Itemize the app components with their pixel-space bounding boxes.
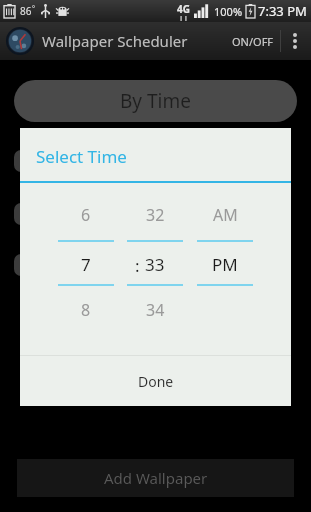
staticText: 6 — [81, 204, 91, 226]
staticText: Wallpaper Scheduler — [42, 31, 188, 51]
staticText: AM — [213, 204, 238, 226]
staticText: : — [135, 254, 140, 277]
staticText: 34 — [146, 299, 165, 321]
staticText: Add Wallpaper — [104, 468, 208, 488]
button[interactable]: Done — [20, 356, 291, 406]
staticText: PM — [212, 253, 238, 276]
staticText: 7 — [81, 253, 91, 276]
staticText: 8 — [81, 299, 91, 321]
button[interactable] — [14, 254, 28, 276]
button[interactable] — [14, 150, 28, 172]
button[interactable]: 32 — [127, 183, 183, 355]
button[interactable]: ON/OFF — [226, 26, 280, 57]
button[interactable]: By Time — [14, 80, 297, 122]
staticText: Select Time — [36, 145, 127, 168]
button[interactable]: More options — [281, 22, 309, 60]
button[interactable] — [14, 203, 28, 225]
staticText: By Time — [120, 88, 191, 114]
staticText: 100% — [214, 4, 243, 19]
staticText: ° — [32, 4, 35, 14]
staticText: 86 — [20, 4, 32, 18]
button[interactable]: AM — [197, 183, 253, 355]
staticText: 32 — [146, 204, 165, 226]
button[interactable]: Add Wallpaper — [17, 459, 294, 497]
staticText: ON/OFF — [232, 34, 274, 49]
staticText: 4G — [177, 2, 190, 16]
button[interactable]: 6 — [58, 183, 114, 355]
staticText: 7:33 PM — [258, 2, 307, 20]
staticText: 33 — [145, 253, 165, 276]
staticText: Done — [138, 372, 174, 391]
